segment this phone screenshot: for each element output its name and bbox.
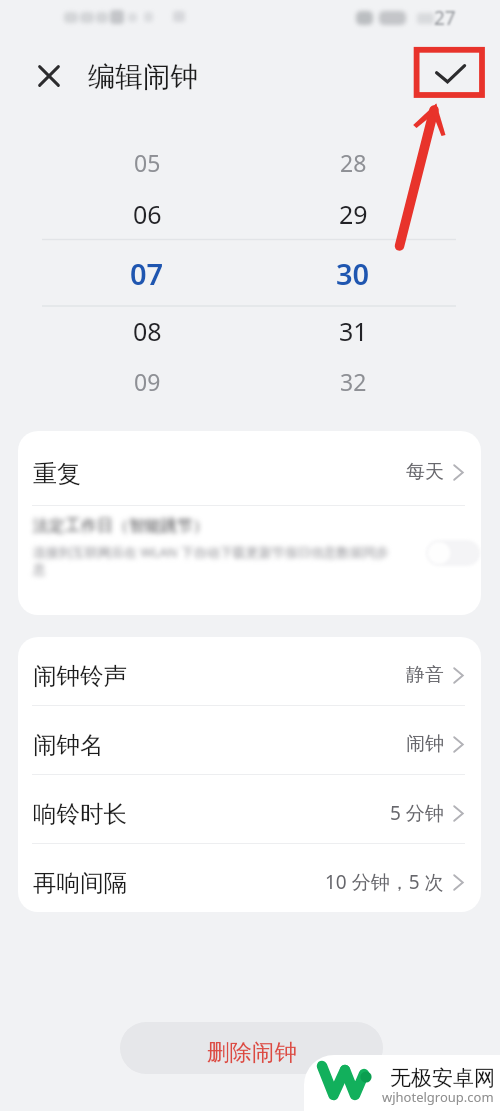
button[interactable]: 再响间隔 — [18, 844, 481, 912]
staticText: 响铃时长 — [33, 799, 127, 829]
staticText: 5 分钟 — [390, 800, 444, 826]
staticText: 息 — [33, 561, 46, 577]
staticText: 删除闹钟 — [207, 1038, 297, 1066]
staticText: 09 — [134, 366, 161, 397]
staticText: 闹钟 — [406, 732, 444, 756]
staticText: 编辑闹钟 — [88, 60, 198, 95]
staticText: 无极安卓网 — [390, 1065, 495, 1091]
staticText: 07 — [130, 254, 164, 293]
staticText: 再响间隔 — [33, 868, 127, 898]
staticText: wjhotelgroup.com — [382, 1088, 494, 1106]
staticText: 05 — [134, 147, 161, 178]
staticText: 10 分钟，5 次 — [325, 869, 444, 895]
button[interactable]: 删除闹钟 — [120, 1022, 383, 1074]
staticText: 27 — [434, 5, 456, 31]
staticText: 30 — [336, 254, 370, 293]
button[interactable]: Confirm — [433, 61, 465, 93]
staticText: 静音 — [406, 663, 444, 687]
staticText: 重复 — [33, 459, 81, 489]
staticText: 32 — [340, 366, 367, 397]
staticText: 31 — [339, 314, 368, 348]
button[interactable]: Statutory workday — [18, 506, 481, 615]
staticText: 闹钟名 — [33, 730, 104, 760]
staticText: 08 — [133, 314, 162, 348]
staticText: 29 — [339, 197, 368, 231]
button[interactable]: 闹钟铃声 — [18, 637, 481, 705]
staticText: 连接到互联网后在 WLAN 下自动下载更新节假日信息数据同步 — [33, 543, 389, 561]
staticText: 闹钟铃声 — [33, 661, 127, 691]
button[interactable]: 重复 — [18, 431, 481, 505]
staticText: 06 — [133, 197, 162, 231]
button[interactable]: Toggle workday — [426, 540, 480, 566]
staticText: 每天 — [406, 460, 444, 484]
button[interactable]: Close — [38, 65, 60, 87]
button[interactable]: 闹钟名 — [18, 706, 481, 774]
staticText: 法定工作日（智能跳节） — [33, 516, 209, 536]
staticText: 28 — [340, 147, 367, 178]
button[interactable]: 响铃时长 — [18, 775, 481, 843]
